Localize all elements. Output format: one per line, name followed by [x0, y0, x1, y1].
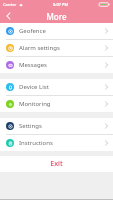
button[interactable]: Device List — [0, 79, 113, 95]
button[interactable]: Instructions — [0, 135, 113, 151]
button[interactable]: Geofence — [0, 23, 113, 39]
button[interactable]: Alarm settings — [0, 40, 113, 56]
staticText: Carrier — [3, 2, 17, 7]
button[interactable]: Exit — [0, 156, 113, 172]
staticText: Device List — [19, 83, 49, 91]
staticText: Alarm settings — [19, 44, 60, 52]
staticText: 8:07 PM — [53, 2, 69, 7]
staticText: Messages — [19, 61, 47, 69]
button[interactable]: Settings — [0, 118, 113, 134]
button[interactable]: Monitoring — [0, 96, 113, 112]
staticText: Instructions — [19, 139, 53, 147]
staticText: Settings — [19, 122, 42, 130]
button[interactable]: Messages — [0, 57, 113, 73]
staticText: More — [46, 11, 67, 22]
button[interactable]: Back — [0, 9, 16, 23]
staticText: Monitoring — [19, 100, 51, 108]
staticText: Exit — [50, 159, 63, 169]
staticText: Geofence — [19, 27, 46, 35]
